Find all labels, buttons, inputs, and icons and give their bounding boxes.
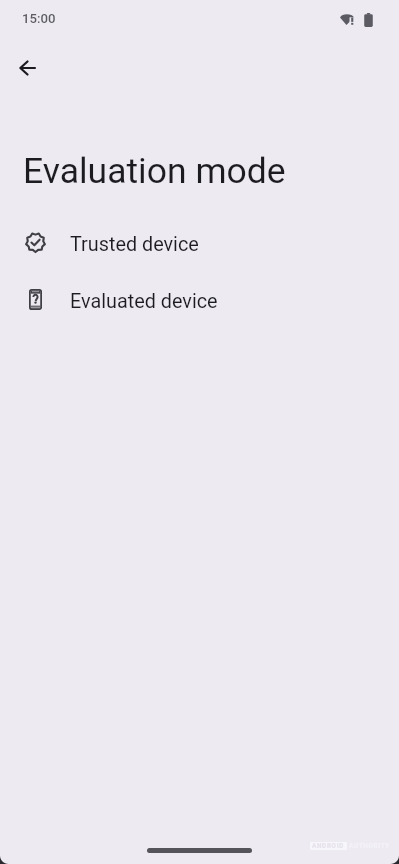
other: Battery [364,13,373,27]
button[interactable]: Back [7,48,47,88]
staticText: AUTHORITY [349,842,390,849]
button[interactable]: Trusted device [0,214,399,270]
staticText: 15:00 [22,11,56,26]
button[interactable]: Evaluated device [0,271,399,327]
staticText: ANDROID [312,842,344,849]
staticText: Trusted device [70,233,199,256]
other: Wi-Fi, no internet [340,13,354,25]
staticText: Evaluated device [70,290,218,313]
staticText: Evaluation mode [23,150,286,192]
